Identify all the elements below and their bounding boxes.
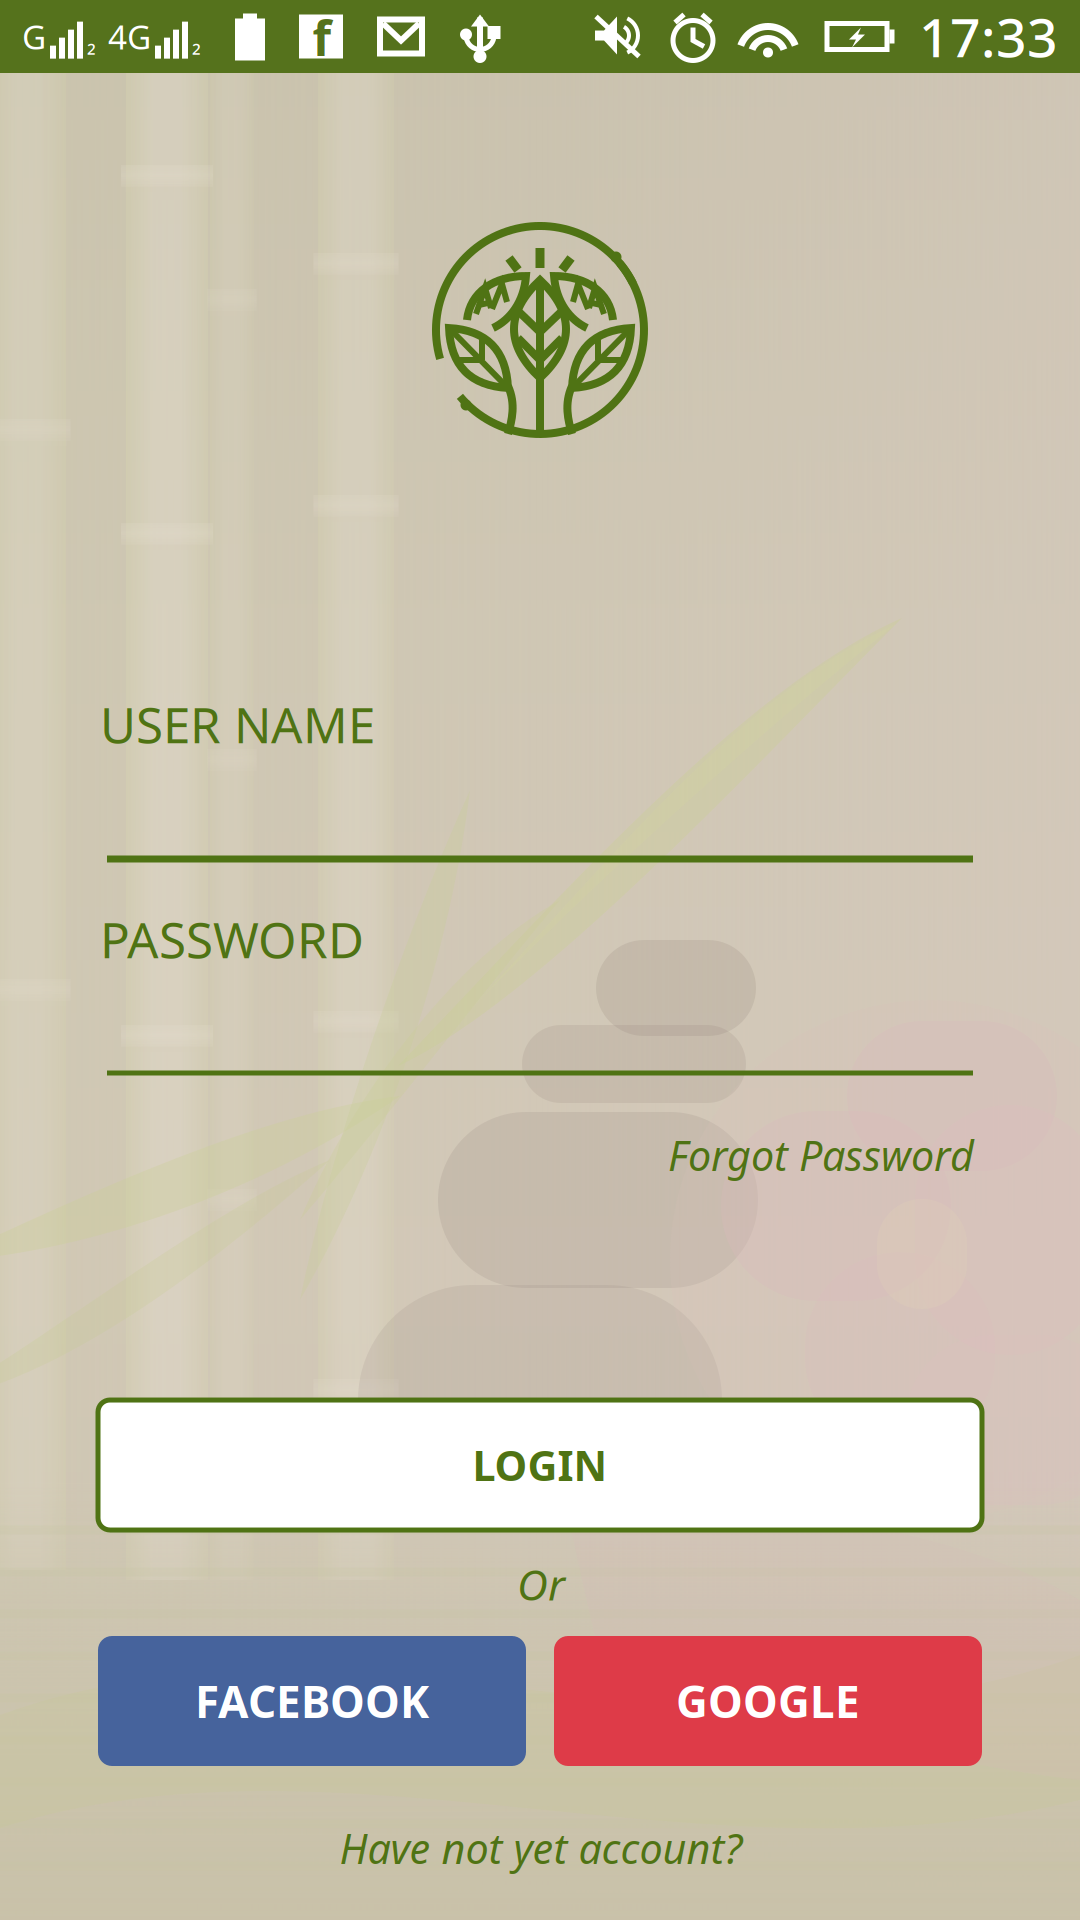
staticText: FACEBOOK [195,1672,429,1730]
staticText: Have not yet account? [339,1821,742,1875]
staticText: f [312,6,331,69]
staticText: LOGIN [472,1438,607,1492]
staticText: ₂ [87,25,96,59]
button[interactable]: FACEBOOK [98,1636,526,1766]
staticText: USER NAME [100,691,375,757]
button[interactable]: LOGIN [98,1400,982,1530]
staticText: 17:33 [919,1,1058,72]
staticText: ₂ [192,25,201,59]
staticText: Or [517,1556,565,1612]
button[interactable]: Forgot Password [554,1118,974,1192]
button[interactable]: GOOGLE [554,1636,982,1766]
button[interactable]: Have not yet account? [311,1813,771,1883]
staticText: Forgot Password [668,1128,974,1182]
staticText: GOOGLE [676,1672,860,1730]
staticText: PASSWORD [100,906,364,972]
staticText: 4G [108,14,151,59]
staticText: G [22,14,46,59]
